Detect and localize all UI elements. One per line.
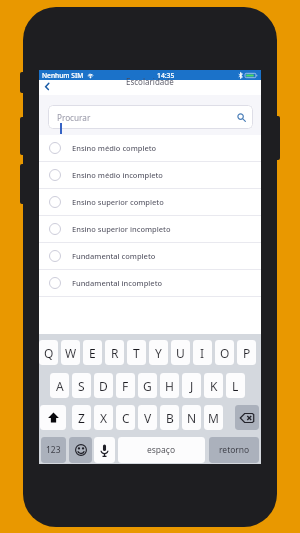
button[interactable]: F	[116, 373, 135, 398]
button[interactable]: 123	[41, 437, 66, 463]
button[interactable]: T	[127, 340, 146, 365]
staticText: D	[99, 378, 108, 394]
button[interactable]: U	[171, 340, 190, 365]
button[interactable]: Ensino médio incompleto	[39, 162, 261, 188]
staticText: K	[210, 378, 218, 394]
staticText: Fundamental incompleto	[72, 278, 163, 288]
staticText: X	[100, 410, 108, 426]
staticText: Ensino médio incompleto	[72, 170, 163, 180]
button[interactable]: S	[72, 373, 91, 398]
button[interactable]: Fundamental incompleto	[39, 270, 261, 296]
staticText: P	[243, 345, 251, 361]
staticText: F	[122, 378, 129, 394]
button[interactable]: D	[94, 373, 113, 398]
staticText: M	[208, 410, 219, 426]
staticText: R	[111, 345, 119, 361]
button[interactable]: N	[182, 405, 201, 430]
button[interactable]: O	[215, 340, 234, 365]
staticText: Z	[78, 410, 85, 426]
staticText: Ensino superior completo	[72, 197, 164, 207]
staticText: retorno	[219, 444, 250, 456]
staticText: W	[65, 345, 77, 361]
button[interactable]: W	[61, 340, 80, 365]
button[interactable]: Ensino médio completo	[39, 135, 261, 161]
staticText: Q	[44, 345, 54, 361]
staticText: O	[220, 345, 230, 361]
button[interactable]: Procurar	[48, 105, 253, 129]
staticText: C	[122, 410, 130, 426]
button[interactable]: Y	[149, 340, 168, 365]
button[interactable]: Apagar	[235, 405, 259, 430]
button[interactable]: R	[105, 340, 124, 365]
button[interactable]: L	[226, 373, 245, 398]
staticText: Fundamental completo	[72, 251, 156, 261]
button[interactable]: Emoji	[69, 437, 92, 463]
button[interactable]: Shift	[40, 405, 66, 430]
staticText: L	[232, 378, 239, 394]
staticText: N	[187, 410, 197, 426]
staticText: E	[89, 345, 96, 361]
staticText: T	[133, 345, 140, 361]
button[interactable]: Ensino superior incompleto	[39, 216, 261, 242]
button[interactable]: G	[138, 373, 157, 398]
button[interactable]: H	[160, 373, 179, 398]
staticText: B	[166, 410, 174, 426]
button[interactable]: espaço	[118, 437, 205, 463]
button[interactable]: V	[138, 405, 157, 430]
staticText: V	[144, 410, 152, 426]
staticText: J	[190, 378, 194, 394]
button[interactable]: Fundamental completo	[39, 243, 261, 269]
staticText: A	[56, 378, 64, 394]
staticText: Ensino médio completo	[72, 143, 157, 153]
staticText: espaço	[147, 444, 176, 456]
staticText: I	[200, 345, 205, 361]
button[interactable]: Z	[72, 405, 91, 430]
button[interactable]: I	[193, 340, 212, 365]
button[interactable]: Ensino superior completo	[39, 189, 261, 215]
button[interactable]: J	[182, 373, 201, 398]
button[interactable]: X	[94, 405, 113, 430]
staticText: S	[78, 378, 85, 394]
staticText: Nenhum SIM	[42, 71, 84, 80]
button[interactable]: K	[204, 373, 223, 398]
button[interactable]: Q	[39, 340, 58, 365]
button[interactable]: Voltar	[42, 81, 53, 92]
button[interactable]: A	[50, 373, 69, 398]
staticText: Procurar	[57, 112, 91, 123]
staticText: Y	[155, 345, 162, 361]
staticText: Escolaridade	[126, 76, 174, 87]
staticText: 14:35	[157, 71, 175, 80]
staticText: 123	[46, 444, 61, 456]
button[interactable]: P	[237, 340, 256, 365]
button[interactable]: B	[160, 405, 179, 430]
staticText: G	[143, 378, 152, 394]
button[interactable]: Ditado	[94, 437, 115, 463]
button[interactable]: C	[116, 405, 135, 430]
staticText: Ensino superior incompleto	[72, 224, 171, 234]
button[interactable]: M	[204, 405, 223, 430]
button[interactable]: E	[83, 340, 102, 365]
button[interactable]: retorno	[209, 437, 259, 463]
staticText: H	[165, 378, 174, 394]
staticText: U	[176, 345, 185, 361]
